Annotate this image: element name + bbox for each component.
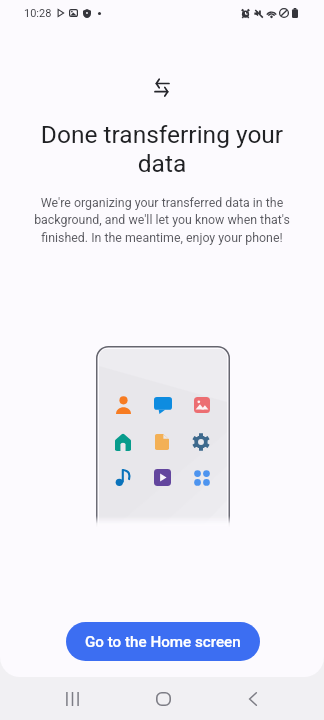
button[interactable]: Home	[141, 677, 185, 720]
staticText: 10:28	[24, 7, 52, 20]
button[interactable]: Recent apps	[50, 677, 94, 720]
other: Data transfer	[155, 80, 169, 96]
staticText: Go to the Home screen	[85, 633, 241, 651]
button[interactable]: Back	[231, 677, 275, 720]
button[interactable]: Go to the Home screen	[66, 622, 260, 661]
staticText: Done transferring your data	[30, 120, 294, 178]
staticText: We're organizing your transferred data i…	[30, 195, 294, 245]
